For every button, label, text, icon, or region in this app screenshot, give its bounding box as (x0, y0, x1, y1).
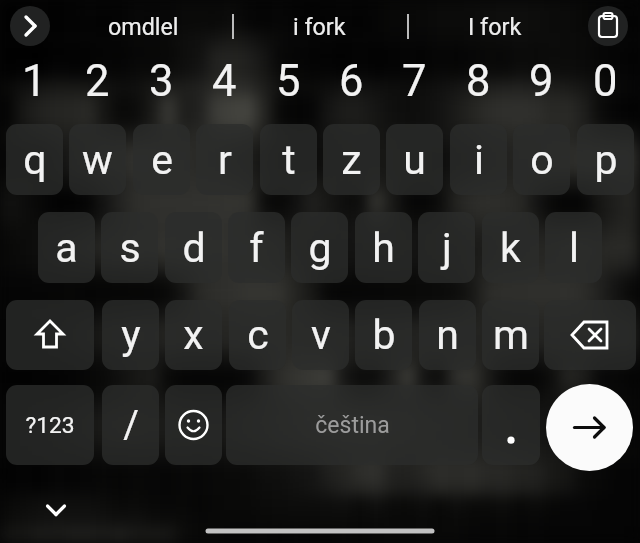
button[interactable]: j (418, 212, 475, 283)
button[interactable]: 0 (577, 50, 634, 112)
button[interactable]: y (102, 300, 159, 370)
button[interactable]: a (38, 212, 95, 283)
button[interactable]: f (228, 212, 285, 283)
button[interactable]: u (386, 124, 443, 195)
staticText: n (436, 311, 459, 359)
button[interactable]: Period (482, 385, 540, 465)
staticText: 9 (529, 56, 554, 107)
button[interactable]: p (577, 124, 634, 195)
button[interactable]: r (196, 124, 253, 195)
button[interactable]: m (482, 300, 539, 370)
button[interactable]: More suggestions (10, 6, 50, 46)
button[interactable]: 5 (260, 50, 317, 112)
staticText: k (500, 224, 521, 272)
staticText: i (474, 136, 484, 184)
staticText: m (493, 311, 529, 359)
staticText: 0 (593, 56, 618, 107)
staticText: d (182, 224, 206, 272)
staticText: 2 (85, 56, 110, 107)
button[interactable]: x (165, 300, 222, 370)
button[interactable]: 2 (69, 50, 126, 112)
staticText: h (372, 224, 395, 272)
staticText: l (569, 224, 579, 272)
button[interactable]: w (69, 124, 126, 195)
button[interactable]: Emoji (165, 385, 222, 465)
staticText: p (594, 136, 618, 184)
staticText: 1 (22, 56, 47, 107)
staticText: 8 (466, 56, 491, 107)
button[interactable]: 1 (6, 50, 63, 112)
button[interactable]: c (229, 300, 286, 370)
button[interactable]: t (260, 124, 317, 195)
button[interactable]: čeština (226, 385, 478, 465)
staticText: e (151, 136, 173, 184)
button[interactable]: 9 (513, 50, 570, 112)
button[interactable]: b (355, 300, 412, 370)
button[interactable]: k (482, 212, 539, 283)
button[interactable]: Hide keyboard (36, 490, 76, 530)
button[interactable]: Shift (6, 300, 94, 370)
staticText: j (442, 224, 452, 272)
staticText: 5 (276, 56, 301, 107)
staticText: c (247, 311, 269, 359)
staticText: t (282, 136, 296, 184)
button[interactable]: v (292, 300, 349, 370)
button[interactable]: q (6, 124, 63, 195)
staticText: x (183, 311, 204, 359)
staticText: 4 (212, 56, 237, 107)
button[interactable]: i fork (239, 0, 399, 52)
staticText: / (123, 403, 139, 448)
button[interactable]: z (323, 124, 380, 195)
button[interactable]: omdlel (63, 0, 223, 52)
staticText: 6 (339, 56, 364, 107)
staticText: I fork (468, 13, 522, 40)
staticText: ?123 (25, 412, 75, 439)
staticText: 3 (149, 56, 174, 107)
staticText: z (341, 136, 362, 184)
staticText: omdlel (108, 13, 179, 40)
button[interactable]: Clipboard (588, 6, 628, 46)
button[interactable]: n (419, 300, 476, 370)
staticText: q (23, 136, 47, 184)
staticText: y (121, 311, 141, 359)
button[interactable]: I fork (415, 0, 575, 52)
staticText: a (55, 224, 78, 272)
staticText: čeština (315, 412, 390, 439)
staticText: r (218, 136, 232, 184)
staticText: b (372, 311, 396, 359)
staticText: g (308, 224, 332, 272)
button[interactable]: g (291, 212, 348, 283)
button[interactable]: 3 (133, 50, 190, 112)
button[interactable]: 6 (323, 50, 380, 112)
staticText: i fork (293, 13, 346, 40)
staticText: f (249, 224, 264, 272)
staticText: u (403, 136, 426, 184)
staticText: v (311, 311, 331, 359)
button[interactable]: o (513, 124, 570, 195)
button[interactable]: 7 (386, 50, 443, 112)
button[interactable]: h (355, 212, 412, 283)
button[interactable]: d (165, 212, 222, 283)
staticText: o (530, 136, 554, 184)
button[interactable]: s (101, 212, 158, 283)
button[interactable]: / (102, 385, 159, 465)
button[interactable]: e (133, 124, 190, 195)
button[interactable]: 4 (196, 50, 253, 112)
button[interactable]: l (545, 212, 602, 283)
button[interactable]: ?123 (6, 385, 94, 465)
staticText: 7 (402, 56, 427, 107)
button[interactable]: i (450, 124, 507, 195)
staticText: w (82, 136, 113, 184)
staticText: s (119, 224, 141, 272)
button[interactable]: Enter (546, 384, 633, 471)
button[interactable]: Backspace (544, 300, 636, 370)
button[interactable]: 8 (450, 50, 507, 112)
